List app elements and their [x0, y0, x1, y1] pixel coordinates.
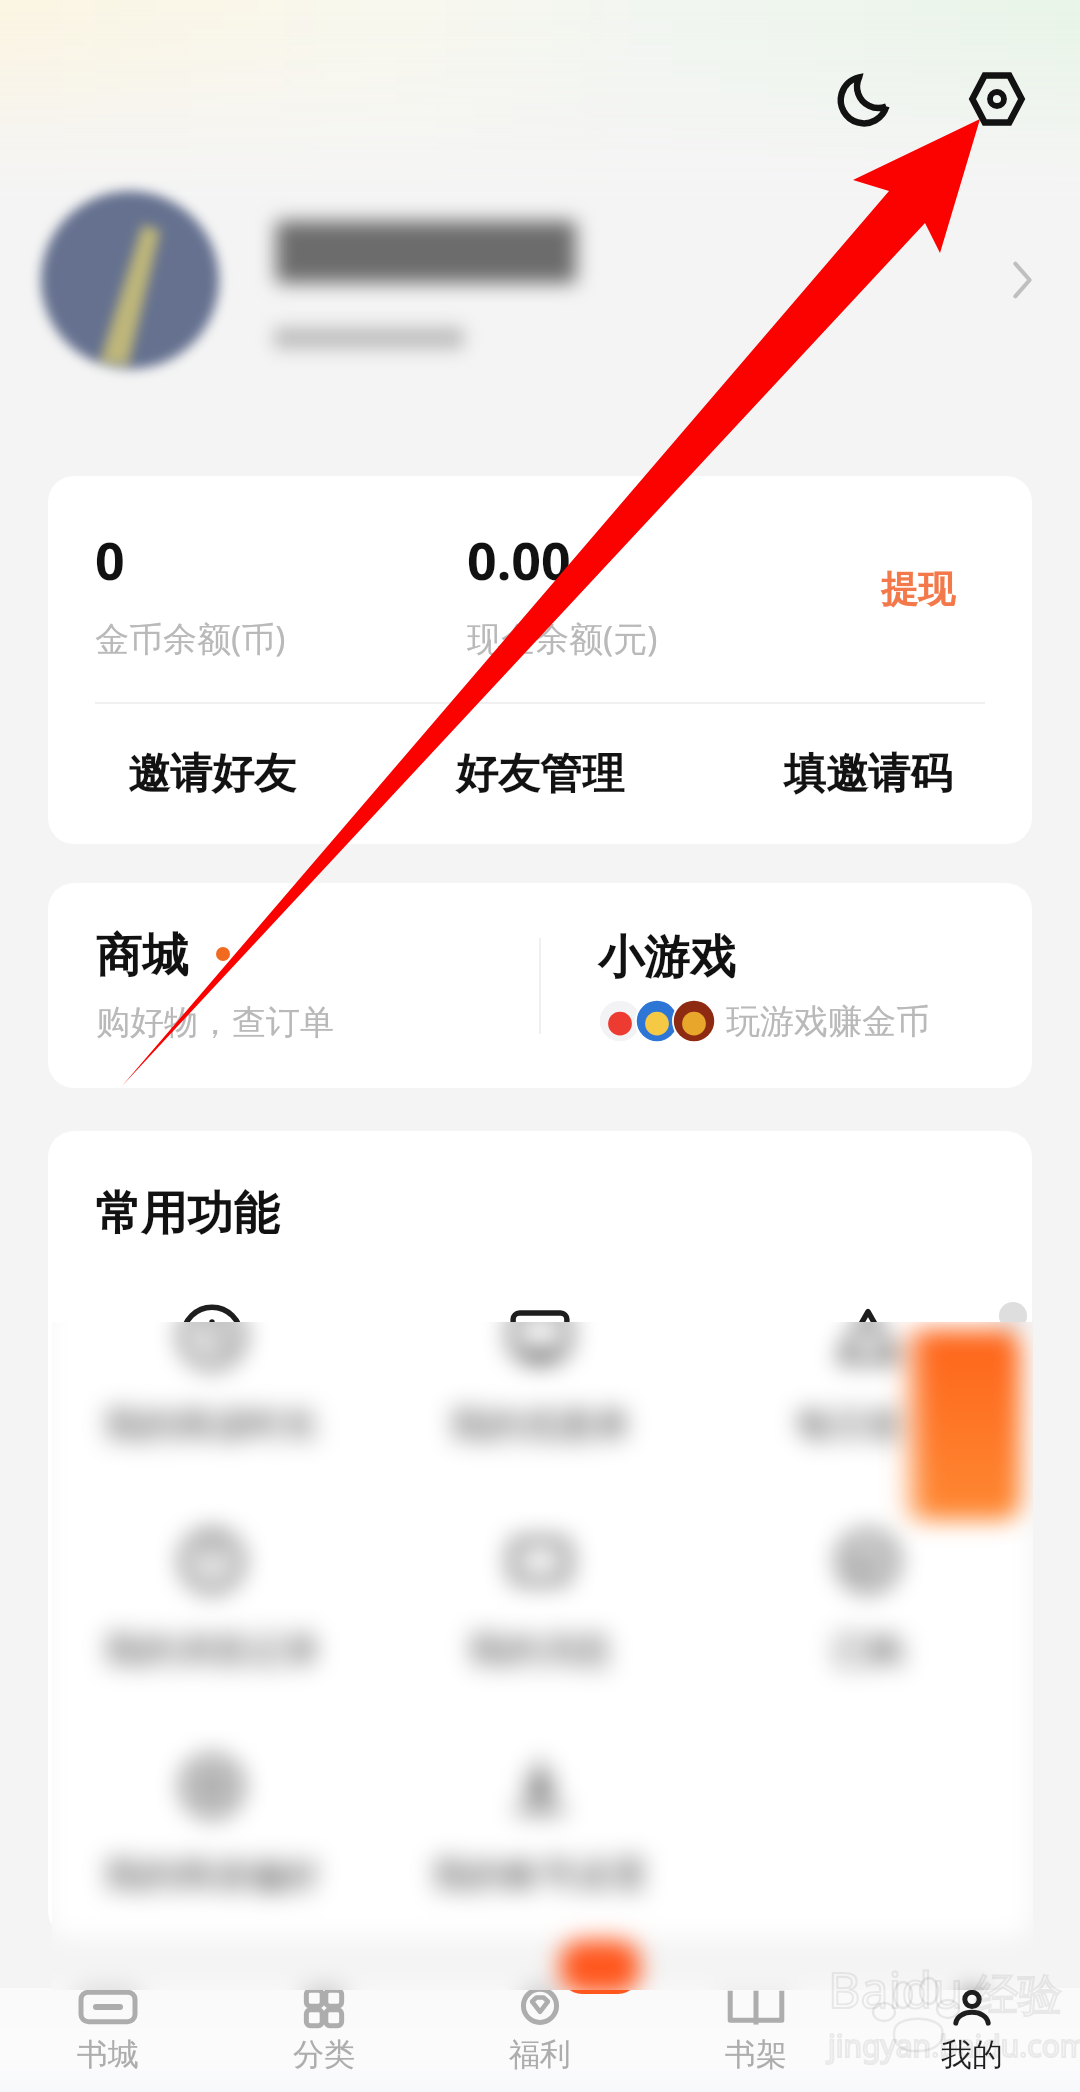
staticText: 我的 [941, 2035, 1003, 2074]
staticText: 商城 [96, 927, 188, 985]
button[interactable]: 我的优惠券 [376, 1304, 704, 1529]
staticText: 我的消息 [468, 1627, 612, 1672]
button[interactable]: 我的账号设置 [376, 1754, 704, 1937]
staticText: Baidu [828, 1955, 964, 2023]
staticText: 商城 [96, 927, 188, 985]
staticText: 0 [95, 524, 125, 595]
staticText: 提现 [881, 566, 955, 613]
button[interactable]: 我的浏览记录 [48, 1529, 376, 1754]
staticText: 我的阅读偏好 [104, 1852, 320, 1897]
staticText: 小游戏 [598, 929, 736, 987]
staticText: 金币余额(币) [95, 615, 286, 661]
button[interactable]: 书城 [0, 1988, 216, 2092]
staticText: 好友管理 [456, 748, 624, 801]
button[interactable]: 我的浏览记录 [48, 1529, 376, 1754]
staticText: 0.00 [467, 524, 571, 595]
staticText: 经验 [974, 1968, 1062, 2023]
staticText: 0.00 [467, 524, 571, 595]
staticText: 邀请好友 [128, 748, 296, 801]
button[interactable]: 提现 [833, 536, 1003, 642]
staticText: 每日签到 [796, 1402, 940, 1447]
staticText: 分类 [293, 2035, 355, 2074]
staticText: 我的浏览记录 [104, 1627, 320, 1672]
staticText: 书城 [77, 2035, 139, 2074]
button[interactable]: 已购 [704, 1529, 1032, 1754]
button[interactable] [0, 180, 1080, 380]
button[interactable]: 提现 [833, 536, 1003, 642]
staticText: 常用功能 [95, 1185, 279, 1243]
button[interactable]: 商城 [48, 883, 539, 1088]
button[interactable]: 分类 [216, 1988, 432, 2092]
staticText: 0 [95, 524, 125, 595]
button[interactable]: 好友管理 [376, 704, 704, 844]
staticText: 玩游戏赚金币 [726, 1000, 930, 1043]
button[interactable]: 小游戏 [541, 883, 1032, 1088]
button[interactable]: Night mode [819, 54, 909, 144]
staticText: 购好物，查订单 [96, 1001, 334, 1044]
staticText: 书架 [725, 2035, 787, 2074]
button[interactable]: 每日签到 [704, 1304, 1032, 1529]
staticText: 书架 [725, 2035, 787, 2074]
button[interactable]: 好友管理 [376, 704, 704, 844]
button[interactable]: Settings [952, 54, 1042, 144]
staticText: 我的优惠券 [450, 1402, 630, 1447]
staticText: 提现 [881, 566, 955, 613]
staticText: 已购 [832, 1627, 904, 1672]
staticText: 书城 [77, 2035, 139, 2074]
staticText: 填邀请码 [784, 748, 952, 801]
staticText: 常用功能 [95, 1185, 279, 1243]
staticText: jingyan.baidu.com [828, 2025, 1080, 2066]
button[interactable]: 我的 [864, 1988, 1080, 2092]
staticText: 现金余额(元) [467, 615, 658, 661]
staticText: 小游戏 [598, 929, 736, 987]
staticText: 已购 [832, 1627, 904, 1672]
button[interactable]: 填邀请码 [704, 704, 1032, 844]
staticText: 我的阅读时长 [104, 1402, 320, 1447]
button[interactable]: 小游戏 [541, 883, 1032, 1088]
button[interactable]: 福利 [432, 1988, 648, 2092]
button[interactable]: Night mode [819, 54, 909, 144]
button[interactable]: 福利 [432, 1988, 648, 2092]
button[interactable]: 我的阅读时长 [48, 1304, 376, 1529]
button[interactable] [0, 180, 1080, 380]
staticText: 我的阅读时长 [104, 1402, 320, 1447]
staticText: 金币余额(币) [95, 615, 286, 661]
button[interactable]: 我的消息 [376, 1529, 704, 1754]
staticText: 我的 [941, 2035, 1003, 2074]
button[interactable]: 我的阅读偏好 [48, 1754, 376, 1937]
button[interactable]: 分类 [216, 1988, 432, 2092]
staticText: 好友管理 [456, 748, 624, 801]
button[interactable]: 我的 [864, 1988, 1080, 2092]
staticText: 每日签到 [796, 1402, 940, 1447]
button[interactable]: 我的账号设置 [376, 1754, 704, 1937]
button[interactable]: 书架 [648, 1988, 864, 2092]
button[interactable]: 填邀请码 [704, 704, 1032, 844]
button[interactable]: 邀请好友 [48, 704, 376, 844]
button[interactable]: Settings [952, 54, 1042, 144]
staticText: 福利 [509, 2035, 571, 2074]
button[interactable]: 邀请好友 [48, 704, 376, 844]
button[interactable]: 我的消息 [376, 1529, 704, 1754]
button[interactable]: 我的阅读偏好 [48, 1754, 376, 1937]
staticText: 我的账号设置 [432, 1852, 648, 1897]
staticText: 邀请好友 [128, 748, 296, 801]
button[interactable]: 书城 [0, 1988, 216, 2092]
staticText: 现金余额(元) [467, 615, 658, 661]
button[interactable]: 商城 [48, 883, 539, 1088]
button[interactable]: 我的优惠券 [376, 1304, 704, 1529]
staticText: 分类 [293, 2035, 355, 2074]
button[interactable]: 已购 [704, 1529, 1032, 1754]
staticText: 我的阅读偏好 [104, 1852, 320, 1897]
button[interactable]: 每日签到 [704, 1304, 1032, 1529]
staticText: 我的优惠券 [450, 1402, 630, 1447]
staticText: 福利 [509, 2035, 571, 2074]
button[interactable]: 书架 [648, 1988, 864, 2092]
staticText: 购好物，查订单 [96, 1001, 334, 1044]
button[interactable]: 我的阅读时长 [48, 1304, 376, 1529]
staticText: 玩游戏赚金币 [726, 1000, 930, 1043]
staticText: 我的消息 [468, 1627, 612, 1672]
staticText: 我的账号设置 [432, 1852, 648, 1897]
staticText: 填邀请码 [784, 748, 952, 801]
